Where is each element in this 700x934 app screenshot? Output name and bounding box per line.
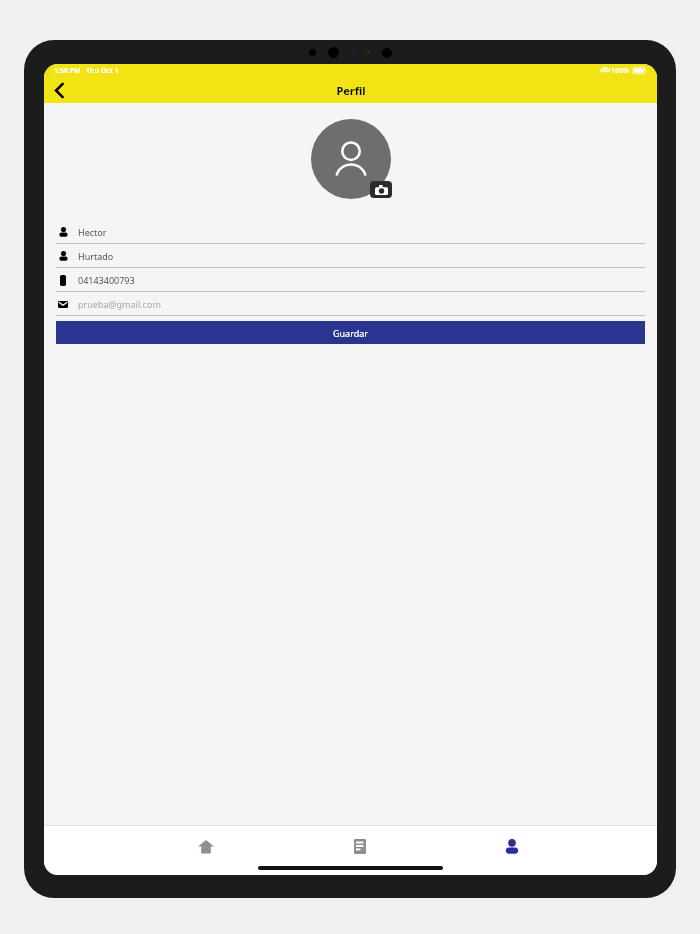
- staticText: 04143400793: [78, 274, 135, 286]
- staticText: prueba@gmail.com: [78, 298, 161, 310]
- button[interactable]: Hector: [56, 220, 645, 244]
- staticText: 1:50 PM Thu Oct 1: [54, 66, 119, 76]
- button[interactable]: Guardar: [56, 321, 645, 344]
- button[interactable]: Profile: [462, 829, 562, 863]
- staticText: Hector: [78, 226, 107, 238]
- staticText: Perfil: [336, 83, 366, 98]
- button[interactable]: Take photo: [370, 181, 392, 198]
- button[interactable]: Back: [44, 77, 74, 103]
- staticText: 100%: [611, 66, 630, 76]
- button[interactable]: prueba@gmail.com: [56, 292, 645, 316]
- staticText: Guardar: [333, 327, 369, 339]
- staticText: Hurtado: [78, 250, 114, 262]
- button[interactable]: Change photo: [311, 119, 391, 199]
- button[interactable]: Hurtado: [56, 244, 645, 268]
- button[interactable]: Home: [179, 829, 233, 863]
- button[interactable]: Orders: [333, 829, 387, 863]
- button[interactable]: 04143400793: [56, 268, 645, 292]
